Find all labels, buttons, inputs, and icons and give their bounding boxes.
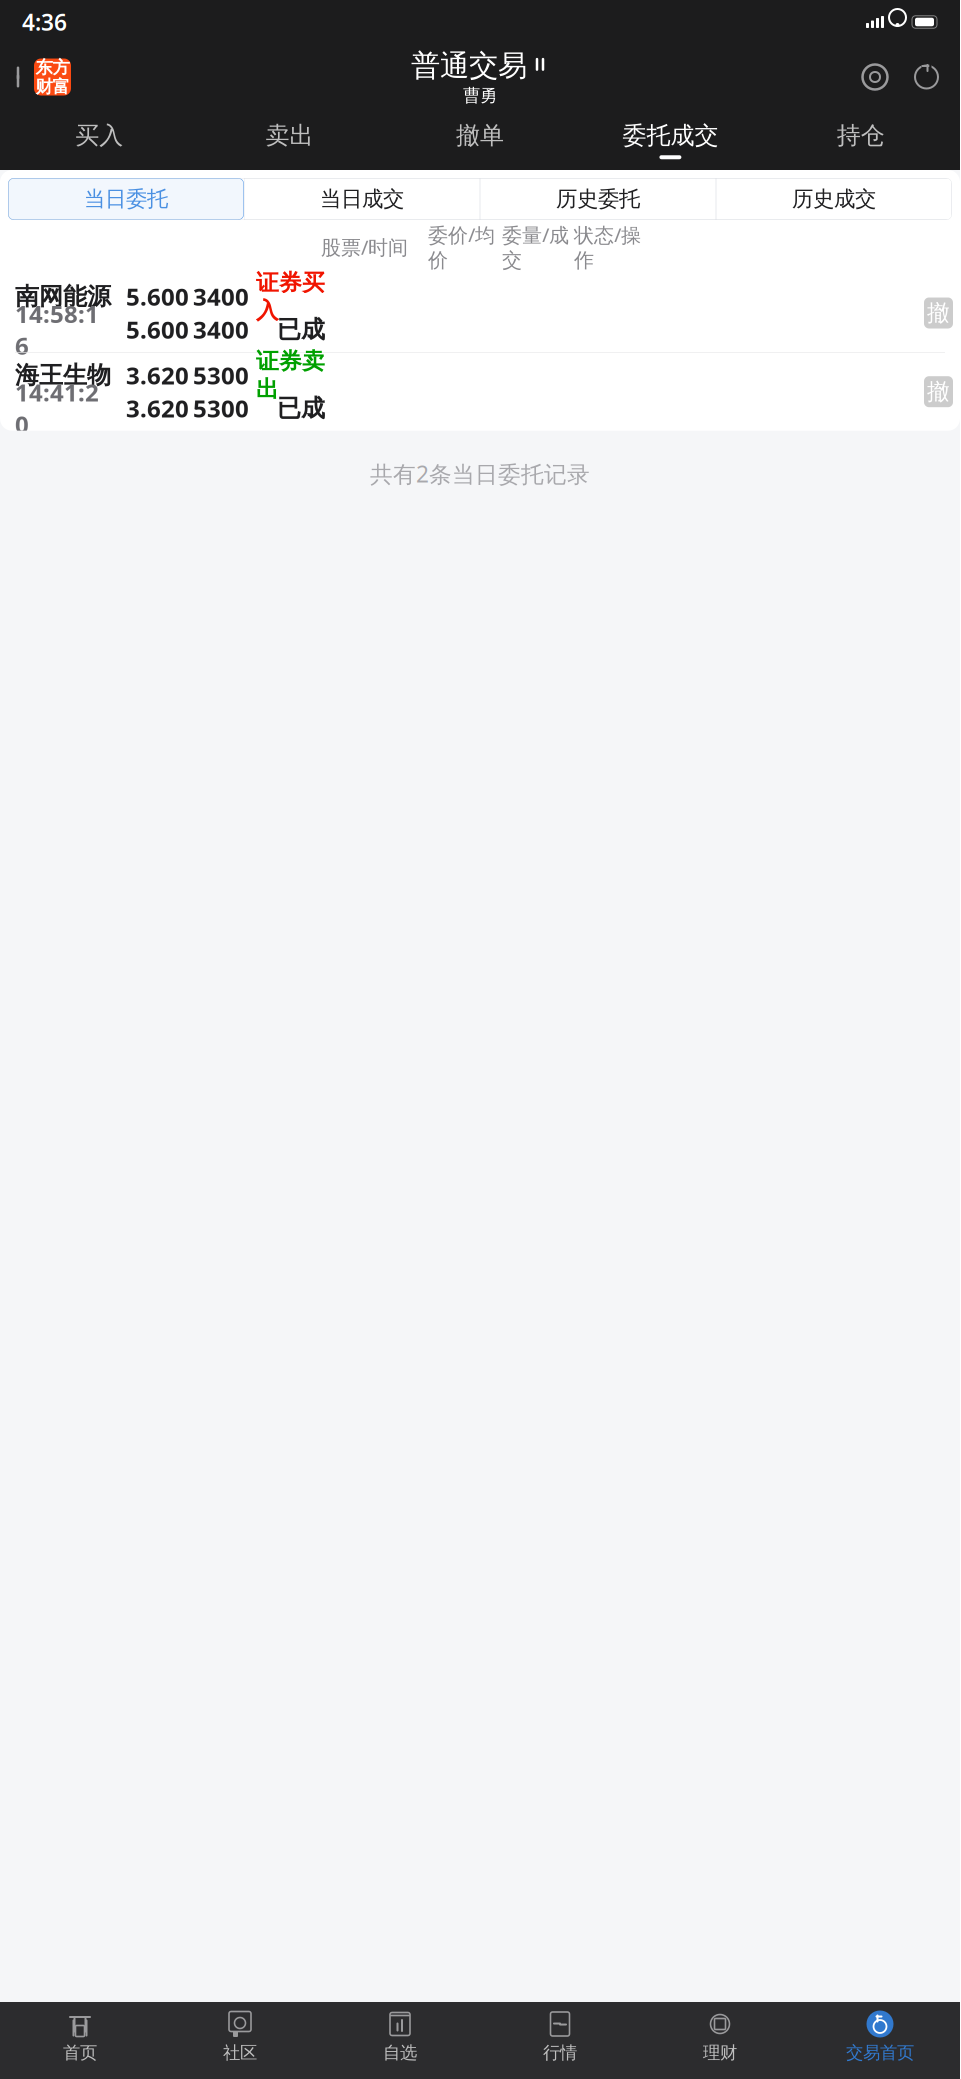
button[interactable]: 买入 [4, 116, 194, 164]
staticText: 历史委托 [556, 186, 640, 212]
staticText: 交易首页 [846, 2042, 914, 2063]
staticText: 撤单 [456, 121, 504, 150]
staticText: 已成 [277, 315, 325, 344]
staticText: 行情 [543, 2042, 577, 2063]
staticText: 证券买入 [256, 269, 325, 324]
staticText: 3.620 [126, 392, 189, 424]
staticText: 委托成交 [622, 121, 718, 150]
staticText: 已成 [277, 393, 325, 423]
staticText: 撤 [927, 378, 950, 406]
button[interactable]: Refresh [905, 55, 948, 98]
staticText: 历史成交 [792, 186, 876, 212]
staticText: 理财 [703, 2042, 737, 2063]
button[interactable]: Back [0, 52, 71, 101]
button[interactable]: 撤单 [385, 116, 575, 164]
button[interactable]: 社区 [160, 2010, 320, 2063]
button[interactable]: Settings [853, 55, 897, 99]
staticText: 3400 [193, 314, 249, 345]
staticText: 5300 [193, 392, 249, 424]
staticText: 14:41:20 [15, 376, 99, 440]
staticText: 持仓 [837, 121, 885, 150]
button[interactable]: 持仓 [766, 116, 956, 164]
staticText: 状态/操作 [574, 221, 641, 272]
staticText: 卖出 [266, 121, 314, 150]
staticText: 股票/时间 [321, 234, 408, 260]
staticText: 自选 [383, 2042, 417, 2063]
button[interactable]: 历史委托 [480, 178, 716, 220]
button[interactable]: 当日成交 [244, 178, 480, 220]
button[interactable]: 委托成交 [575, 116, 766, 164]
button[interactable]: 自选 [320, 2010, 480, 2063]
button[interactable]: 撤 [924, 297, 953, 328]
button[interactable]: 卖出 [194, 116, 385, 164]
button[interactable]: 理财 [640, 2010, 800, 2063]
staticText: 委价/均价 [428, 221, 495, 272]
staticText: 首页 [63, 2042, 97, 2063]
staticText: 3.620 [126, 359, 189, 391]
staticText: 曹勇 [463, 85, 497, 106]
staticText: 共有2条当日委托记录 [370, 459, 590, 489]
staticText: 东方 [35, 57, 69, 78]
staticText: 4:36 [22, 7, 67, 37]
staticText: 南网能源 [15, 282, 111, 311]
staticText: 5300 [193, 359, 249, 391]
staticText: 财富 [35, 76, 69, 97]
button[interactable]: 当日委托 [8, 178, 244, 220]
staticText: 委量/成交 [502, 221, 569, 272]
button[interactable]: 交易首页 [800, 2010, 960, 2063]
button[interactable]: 行情 [480, 2010, 640, 2063]
staticText: 海王生物 [15, 360, 111, 390]
staticText: 证券卖出 [256, 347, 325, 403]
staticText: 当日委托 [84, 186, 168, 212]
button[interactable]: 撤 [924, 376, 953, 407]
staticText: 5.600 [126, 281, 189, 312]
staticText: 14:58:16 [15, 298, 99, 361]
staticText: 5.600 [126, 314, 189, 345]
staticText: 买入 [75, 121, 123, 150]
staticText: 撤 [927, 299, 950, 327]
staticText: 3400 [193, 281, 249, 312]
button[interactable]: 历史成交 [716, 178, 952, 220]
staticText: 当日成交 [320, 186, 404, 212]
staticText: 普通交易 [411, 48, 527, 84]
staticText: 社区 [223, 2042, 257, 2063]
button[interactable]: 首页 [0, 2010, 160, 2063]
